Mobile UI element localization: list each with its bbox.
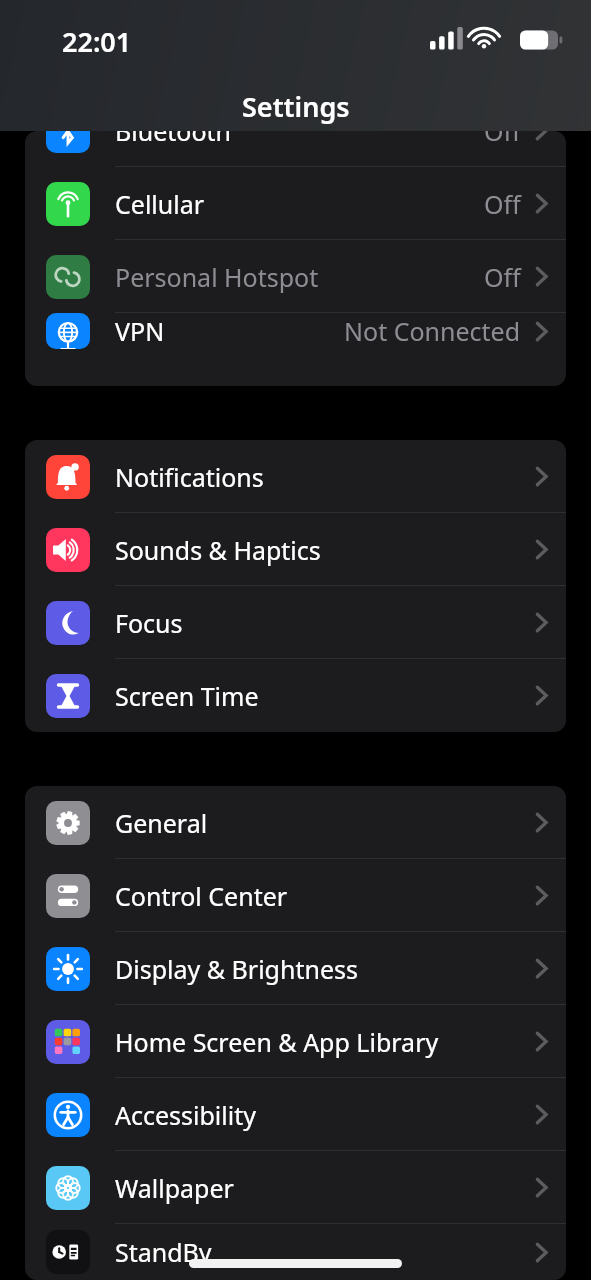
other: Display & Brightness [535,957,548,980]
other: Bluetooth [535,131,548,142]
other: Notifications [535,465,548,488]
staticText: Not Connected [344,314,521,348]
staticText: Off [484,131,521,148]
staticText: Accessibility [115,1098,256,1132]
staticText: Control Center [115,879,288,913]
other: Accessibility [535,1103,548,1126]
staticText: Display & Brightness [115,952,358,986]
button[interactable]: Notifications [25,440,566,513]
staticText: General [115,806,208,840]
button[interactable]: Home Screen & App Library [25,1005,566,1078]
staticText: Off [484,260,521,294]
staticText: Focus [115,606,183,640]
other: Wallpaper [535,1176,548,1199]
staticText: Sounds & Haptics [115,533,321,567]
other: StandBy [535,1241,548,1264]
staticText: Wallpaper [115,1171,234,1205]
button[interactable]: Accessibility [25,1078,566,1151]
staticText: StandBy [115,1235,212,1269]
button[interactable]: StandBy [25,1224,566,1280]
staticText: Cellular [115,187,205,221]
button[interactable]: VPN [25,313,566,349]
button[interactable]: Wallpaper [25,1151,566,1224]
other: Cellular [535,192,548,215]
other: VPN [535,320,548,343]
button[interactable]: Focus [25,586,566,659]
button[interactable]: Cellular [25,167,566,240]
staticText: Off [484,187,521,221]
other: Personal Hotspot [535,265,548,288]
staticText: Screen Time [115,679,259,713]
staticText: VPN [115,314,165,348]
button[interactable]: Sounds & Haptics [25,513,566,586]
button[interactable]: Screen Time [25,659,566,732]
other: General [535,811,548,834]
other: Home Screen & App Library [535,1030,548,1053]
other: Sounds & Haptics [535,538,548,561]
other: Focus [535,611,548,634]
button[interactable]: Control Center [25,859,566,932]
staticText: Personal Hotspot [115,260,319,294]
staticText: Settings [242,88,350,125]
other: Control Center [535,884,548,907]
staticText: Bluetooth [115,131,232,148]
button[interactable]: Bluetooth [25,131,566,167]
button[interactable]: Display & Brightness [25,932,566,1005]
staticText: 22:01 [62,23,132,60]
button[interactable]: Personal Hotspot [25,240,566,313]
staticText: Notifications [115,460,264,494]
button[interactable]: General [25,786,566,859]
other: Screen Time [535,684,548,707]
staticText: Home Screen & App Library [115,1025,439,1059]
